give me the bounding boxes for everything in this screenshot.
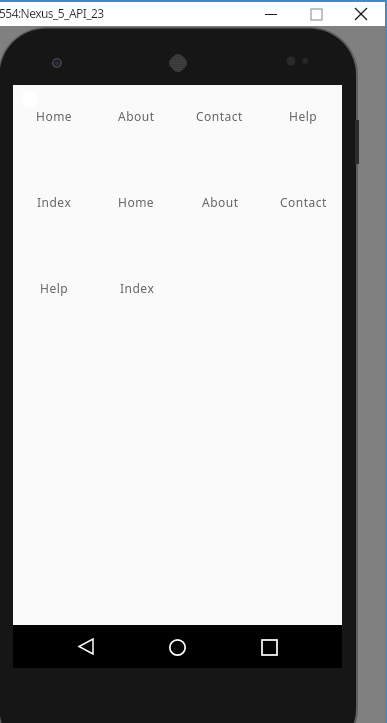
staticText: 554:Nexus_5_API_23: [0, 5, 104, 21]
button[interactable]: Index: [37, 194, 72, 210]
staticText: Index: [37, 194, 72, 210]
button[interactable]: Help: [40, 280, 69, 296]
button[interactable]: Index: [120, 280, 155, 296]
staticText: Home: [36, 108, 73, 124]
button[interactable]: Maximize: [293, 2, 339, 26]
button[interactable]: Contact: [280, 194, 327, 210]
button[interactable]: Recents: [248, 626, 290, 668]
button[interactable]: Back: [65, 625, 107, 667]
staticText: Home: [118, 194, 155, 210]
button[interactable]: Help: [289, 108, 318, 124]
button[interactable]: Contact: [196, 108, 243, 124]
staticText: Help: [289, 108, 318, 124]
staticText: About: [118, 108, 155, 124]
button[interactable]: About: [202, 194, 239, 210]
staticText: Contact: [280, 194, 327, 210]
staticText: Index: [120, 280, 155, 296]
button[interactable]: Close: [338, 2, 384, 26]
staticText: Help: [40, 280, 69, 296]
button[interactable]: Home: [36, 108, 73, 124]
button[interactable]: Minimize: [248, 2, 294, 26]
staticText: About: [202, 194, 239, 210]
button[interactable]: About: [118, 108, 155, 124]
button[interactable]: Home: [118, 194, 155, 210]
button[interactable]: Home: [156, 626, 198, 668]
staticText: Contact: [196, 108, 243, 124]
